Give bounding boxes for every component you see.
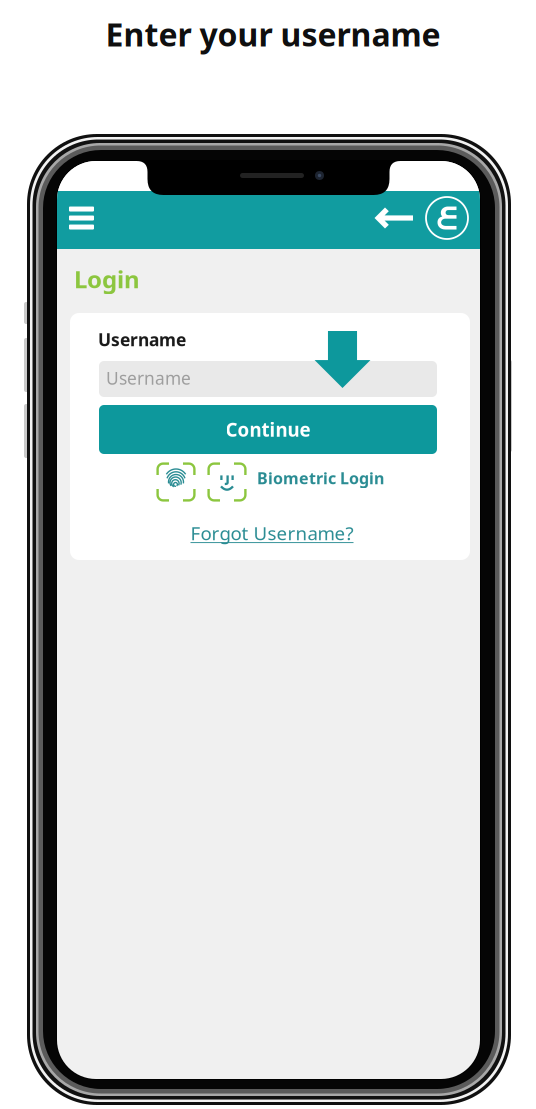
button[interactable]: Back bbox=[370, 191, 418, 245]
staticText: Enter your username bbox=[105, 13, 440, 55]
button[interactable]: Forgot Username? bbox=[172, 520, 372, 546]
staticText: Username bbox=[98, 328, 186, 351]
staticText: Forgot Username? bbox=[190, 521, 353, 545]
button[interactable]: Switch language to Arabic bbox=[423, 191, 471, 245]
staticText: Username bbox=[106, 366, 191, 389]
staticText: Login bbox=[74, 263, 140, 295]
staticText: Continue bbox=[225, 417, 310, 442]
button[interactable]: Biometric Login bbox=[156, 462, 396, 502]
button[interactable]: Menu bbox=[69, 191, 111, 245]
button[interactable]: Continue bbox=[99, 405, 437, 454]
staticText: Biometric Login bbox=[257, 467, 384, 489]
